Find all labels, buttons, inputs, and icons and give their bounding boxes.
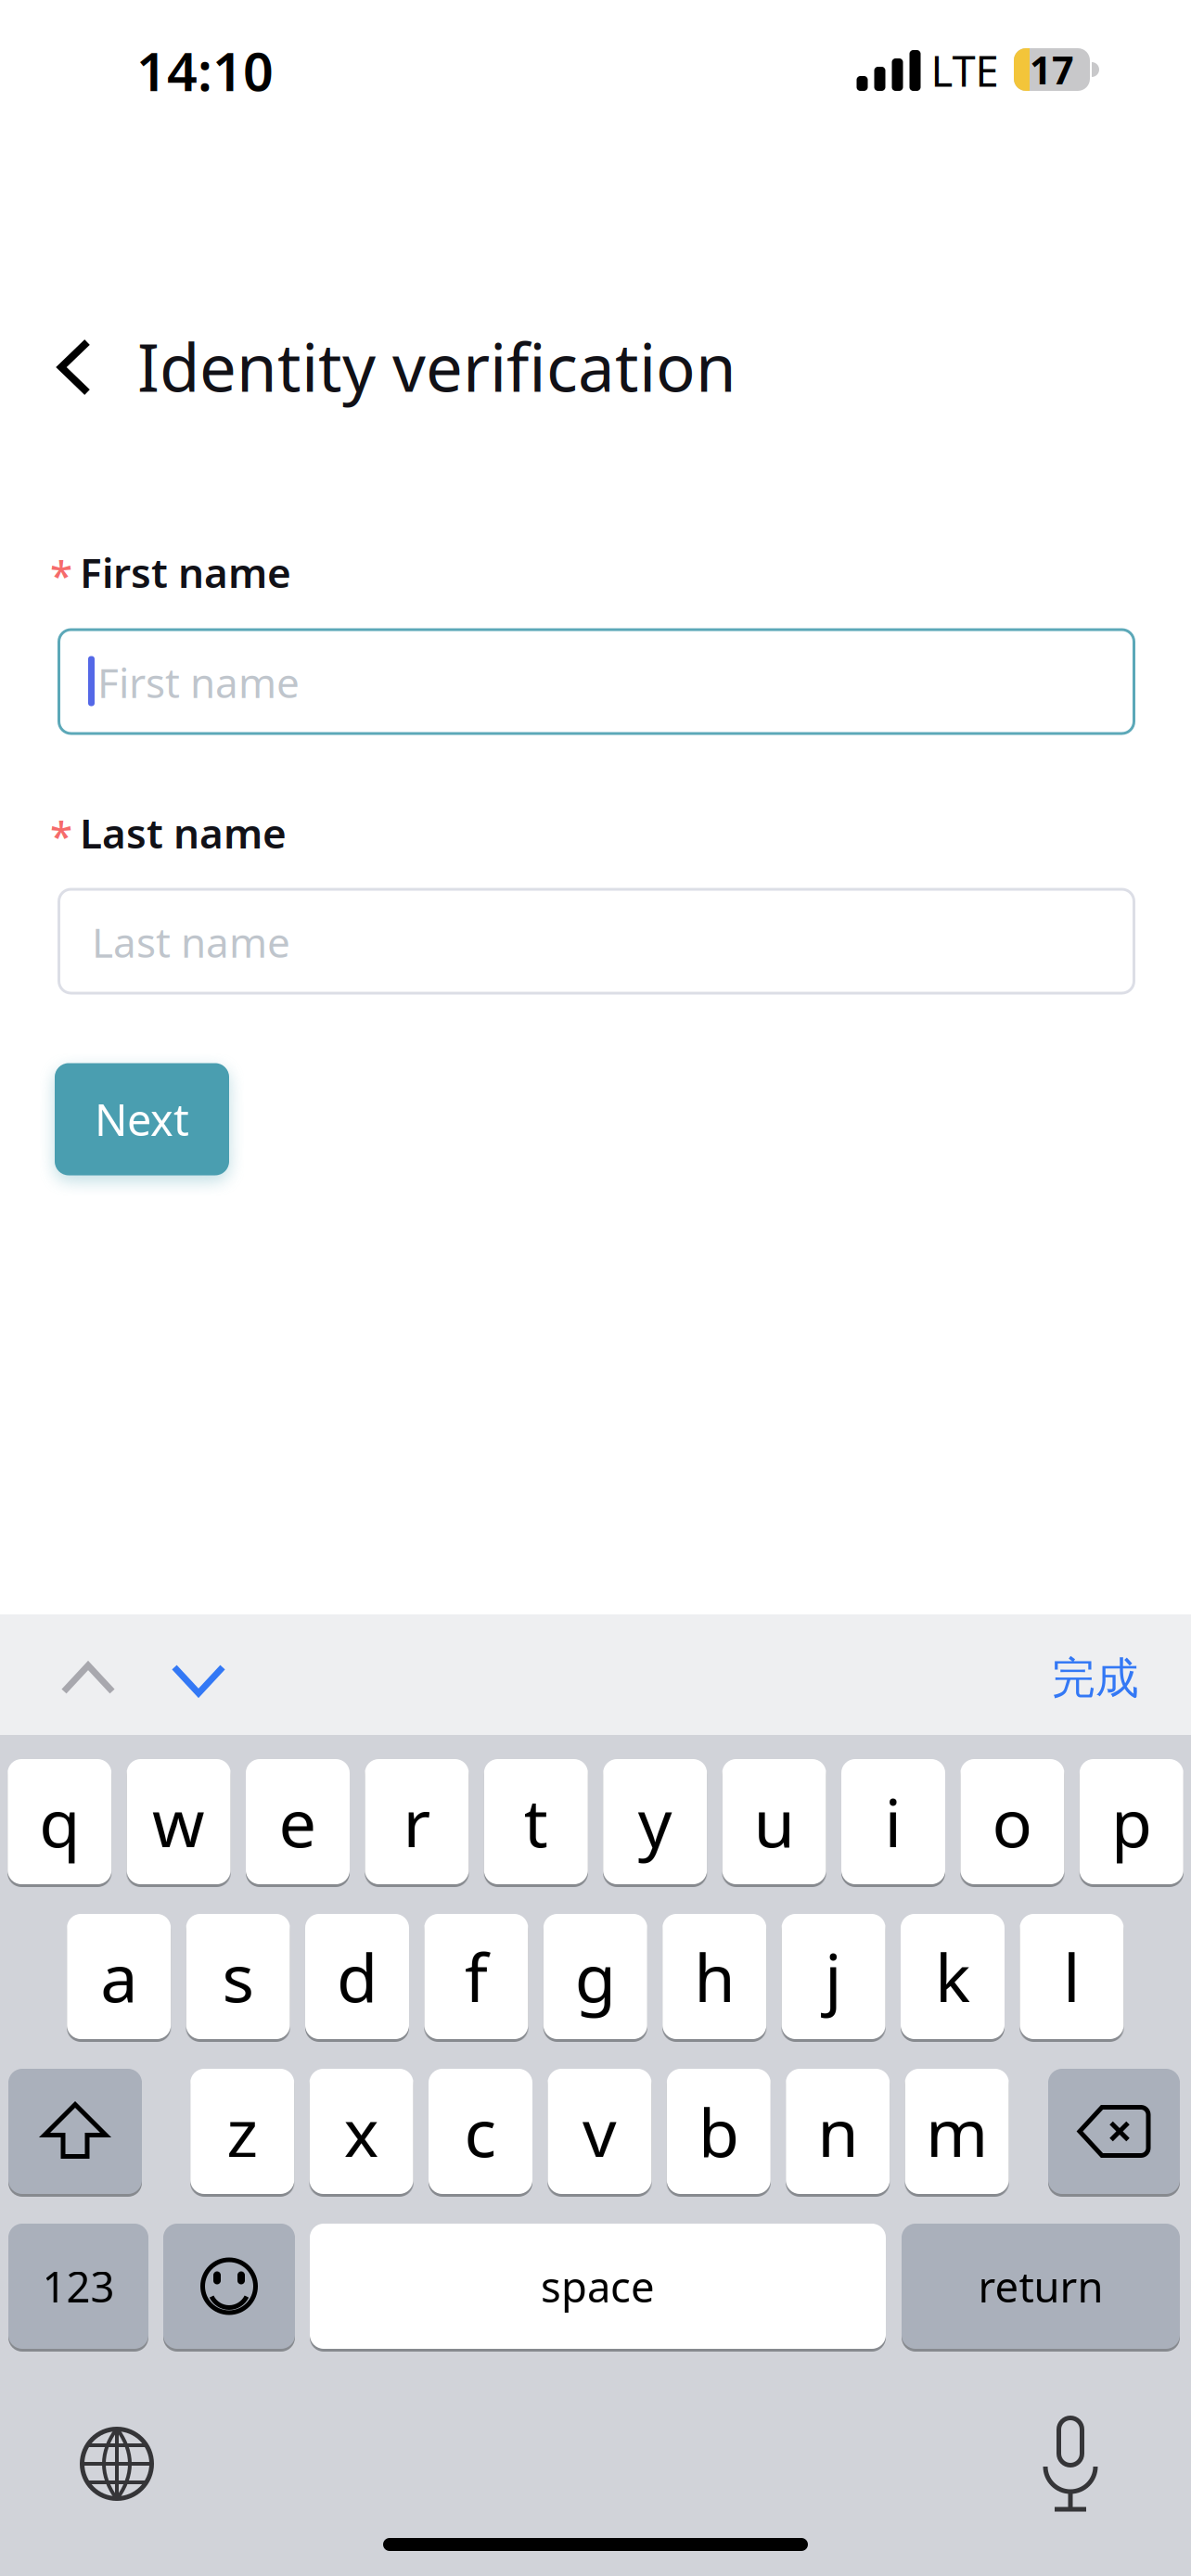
- button[interactable]: First name: [58, 628, 1135, 735]
- button[interactable]: Next field: [172, 1663, 225, 1698]
- button[interactable]: Last name: [58, 888, 1135, 995]
- staticText: LTE: [931, 43, 999, 98]
- staticText: Last name: [80, 806, 287, 860]
- staticText: y: [638, 1777, 672, 1866]
- staticText: 17: [1030, 44, 1074, 95]
- button[interactable]: o: [960, 1759, 1064, 1884]
- staticText: return: [978, 2258, 1103, 2314]
- button[interactable]: m: [905, 2069, 1009, 2194]
- staticText: 14:10: [136, 35, 274, 106]
- button[interactable]: f: [424, 1914, 528, 2039]
- button[interactable]: Dictate: [1043, 2416, 1098, 2508]
- button[interactable]: g: [543, 1914, 647, 2039]
- button[interactable]: a: [67, 1914, 171, 2039]
- staticText: First name: [97, 655, 300, 709]
- button[interactable]: Next: [55, 1063, 229, 1175]
- button[interactable]: Back: [56, 340, 93, 394]
- button[interactable]: s: [186, 1914, 290, 2039]
- staticText: j: [825, 1932, 842, 2021]
- button[interactable]: x: [309, 2069, 413, 2194]
- button[interactable]: i: [841, 1759, 945, 1884]
- button[interactable]: n: [786, 2069, 890, 2194]
- button[interactable]: c: [429, 2069, 532, 2194]
- staticText: g: [575, 1932, 616, 2021]
- button[interactable]: v: [548, 2069, 652, 2194]
- staticText: t: [524, 1777, 548, 1866]
- staticText: m: [926, 2087, 988, 2176]
- staticText: Next: [95, 1090, 189, 1148]
- button[interactable]: p: [1080, 1759, 1183, 1884]
- staticText: a: [100, 1932, 137, 2021]
- staticText: q: [39, 1777, 80, 1866]
- staticText: Identity verification: [137, 323, 736, 410]
- staticText: First name: [80, 545, 291, 599]
- button[interactable]: j: [782, 1914, 885, 2039]
- button[interactable]: b: [667, 2069, 771, 2194]
- staticText: z: [227, 2087, 258, 2176]
- staticText: f: [465, 1932, 488, 2021]
- staticText: i: [884, 1777, 902, 1866]
- staticText: o: [992, 1777, 1033, 1866]
- staticText: e: [279, 1777, 317, 1866]
- staticText: k: [935, 1932, 970, 2021]
- staticText: v: [582, 2087, 617, 2176]
- staticText: p: [1111, 1777, 1152, 1866]
- button[interactable]: z: [190, 2069, 294, 2194]
- staticText: *: [50, 548, 72, 602]
- button[interactable]: return: [902, 2224, 1180, 2349]
- button[interactable]: Emoji: [163, 2224, 295, 2349]
- button[interactable]: y: [603, 1759, 707, 1884]
- button[interactable]: Shift: [8, 2069, 142, 2194]
- button[interactable]: space: [310, 2224, 886, 2349]
- staticText: d: [337, 1932, 378, 2021]
- button[interactable]: e: [246, 1759, 350, 1884]
- staticText: x: [344, 2087, 379, 2176]
- button[interactable]: h: [662, 1914, 766, 2039]
- staticText: b: [698, 2087, 739, 2176]
- staticText: c: [464, 2087, 497, 2176]
- button[interactable]: q: [8, 1759, 111, 1884]
- button[interactable]: Previous field: [61, 1661, 115, 1696]
- staticText: *: [50, 808, 72, 863]
- staticText: u: [754, 1777, 795, 1866]
- button[interactable]: Delete: [1048, 2069, 1180, 2194]
- staticText: h: [694, 1932, 735, 2021]
- button[interactable]: 123: [8, 2224, 148, 2349]
- button[interactable]: w: [127, 1759, 231, 1884]
- button[interactable]: r: [365, 1759, 469, 1884]
- button[interactable]: u: [722, 1759, 826, 1884]
- button[interactable]: l: [1020, 1914, 1124, 2039]
- staticText: n: [817, 2087, 858, 2176]
- staticText: 完成: [1052, 1652, 1139, 1705]
- button[interactable]: 完成: [1052, 1652, 1139, 1705]
- button[interactable]: Next keyboard: [80, 2427, 154, 2501]
- button[interactable]: k: [901, 1914, 1005, 2039]
- staticText: space: [541, 2258, 655, 2314]
- button[interactable]: d: [305, 1914, 409, 2039]
- staticText: w: [152, 1777, 205, 1866]
- staticText: l: [1063, 1932, 1081, 2021]
- staticText: s: [222, 1932, 254, 2021]
- staticText: Last name: [92, 915, 290, 969]
- staticText: r: [403, 1777, 431, 1866]
- button[interactable]: t: [484, 1759, 588, 1884]
- staticText: 123: [42, 2258, 115, 2314]
